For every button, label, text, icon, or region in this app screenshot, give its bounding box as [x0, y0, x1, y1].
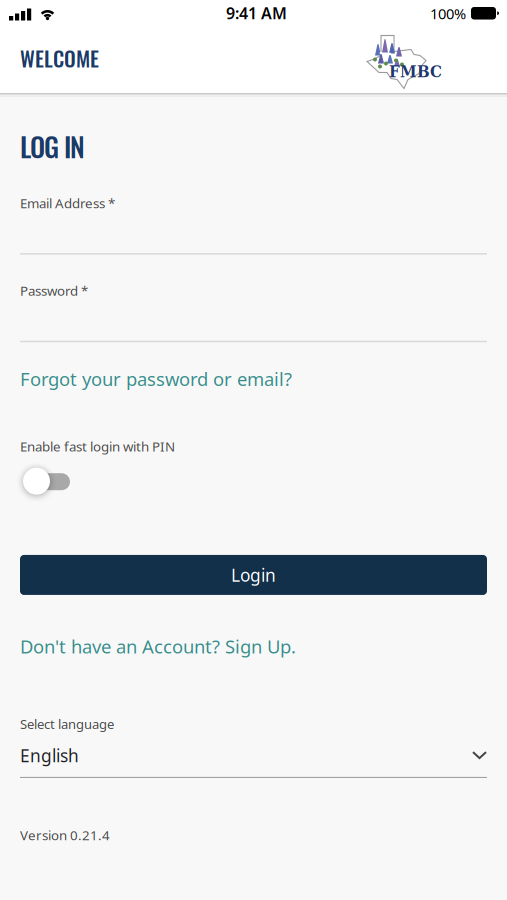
button[interactable]: Password *: [20, 282, 487, 342]
staticText: Login: [231, 563, 276, 587]
staticText: Version 0.21.4: [20, 826, 110, 844]
staticText: Don't have an Account? Sign Up.: [20, 634, 296, 659]
button[interactable]: Forgot your password or email?: [20, 366, 292, 391]
staticText: 100%: [430, 3, 466, 23]
button[interactable]: Email Address *: [20, 194, 487, 255]
staticText: 9:41 AM: [226, 2, 287, 24]
staticText: WELCOME: [20, 43, 99, 73]
staticText: FMBC: [389, 61, 442, 81]
staticText: English: [20, 744, 79, 767]
button[interactable]: Enable fast login with PIN: [20, 467, 70, 495]
button[interactable]: Login: [20, 555, 487, 595]
staticText: LOG IN: [20, 126, 85, 166]
button[interactable]: Select language: [20, 715, 487, 778]
staticText: Email Address *: [20, 194, 115, 212]
staticText: Enable fast login with PIN: [20, 437, 175, 455]
staticText: Password *: [20, 282, 88, 300]
staticText: Forgot your password or email?: [20, 366, 292, 391]
staticText: Select language: [20, 715, 114, 733]
button[interactable]: Don't have an Account? Sign Up.: [20, 634, 296, 659]
